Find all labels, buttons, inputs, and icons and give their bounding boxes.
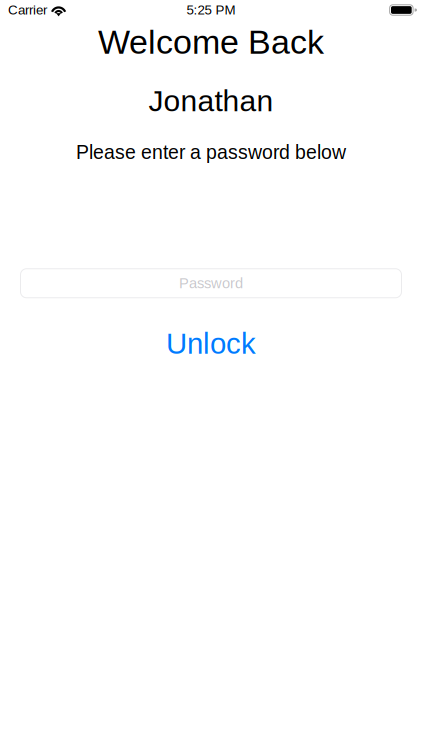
staticText: 5:25 PM bbox=[186, 3, 235, 17]
staticText: Password bbox=[179, 275, 243, 291]
button[interactable]: Password bbox=[20, 268, 402, 298]
button[interactable]: Unlock bbox=[0, 327, 422, 360]
staticText: Jonathan bbox=[148, 84, 273, 117]
staticText: Unlock bbox=[166, 327, 256, 360]
staticText: Carrier bbox=[8, 3, 47, 17]
secureTextField[interactable]: Password bbox=[20, 268, 402, 298]
staticText: Please enter a password below bbox=[76, 141, 346, 163]
staticText: Welcome Back bbox=[98, 23, 324, 61]
